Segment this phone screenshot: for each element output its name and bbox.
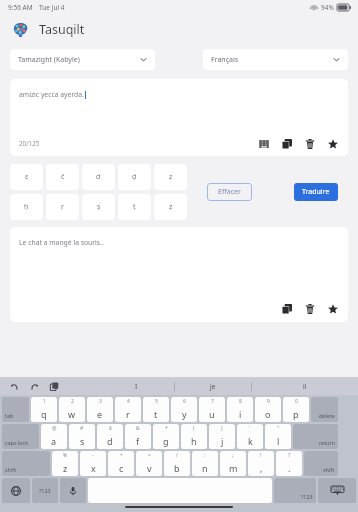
staticText: =	[148, 452, 151, 459]
button[interactable]: Copy	[280, 137, 293, 150]
button[interactable]: return	[293, 424, 338, 449]
staticText: caps lock	[5, 439, 29, 446]
staticText: tab	[5, 412, 14, 419]
button[interactable]: ;	[220, 451, 246, 476]
button[interactable]: ?123	[32, 478, 58, 503]
button[interactable]: 0	[283, 397, 309, 422]
button[interactable]: +	[108, 451, 134, 476]
button[interactable]: Hide keyboard	[318, 478, 356, 503]
button[interactable]: $	[97, 424, 123, 449]
button[interactable]: &	[125, 424, 151, 449]
button[interactable]: :	[192, 451, 218, 476]
button[interactable]: -	[80, 451, 106, 476]
button[interactable]: 5	[143, 397, 169, 422]
button[interactable]: Voice input	[60, 478, 86, 503]
button[interactable]: Delete	[303, 302, 316, 315]
staticText: delete	[319, 412, 335, 419]
staticText: z	[63, 462, 68, 474]
button[interactable]: Favorite	[326, 302, 339, 315]
staticText: f	[136, 435, 140, 447]
button[interactable]: Keyboard	[257, 137, 270, 150]
staticText: 4	[127, 398, 130, 405]
button[interactable]: ?123	[274, 478, 316, 503]
button[interactable]: Traduire	[294, 183, 338, 201]
staticText: &	[136, 425, 140, 432]
button[interactable]: ɛ	[10, 164, 43, 190]
staticText: r	[126, 408, 130, 420]
staticText: !	[260, 452, 262, 459]
button[interactable]: Delete	[303, 137, 316, 150]
staticText: -	[92, 452, 94, 459]
button[interactable]: ?	[276, 451, 302, 476]
button[interactable]: shift	[304, 451, 338, 476]
button[interactable]: Français	[203, 49, 348, 70]
button[interactable]: ẓ	[154, 194, 187, 220]
button[interactable]: 3	[87, 397, 113, 422]
staticText: ?123	[301, 493, 313, 500]
button[interactable]: ṣ	[82, 194, 115, 220]
button[interactable]: '	[237, 424, 263, 449]
staticText: d	[96, 172, 101, 182]
button[interactable]: !	[248, 451, 274, 476]
button[interactable]: )	[209, 424, 235, 449]
staticText: o	[265, 408, 271, 420]
button[interactable]: Change language	[2, 478, 30, 503]
button[interactable]: Effacer	[207, 183, 252, 201]
staticText: (	[193, 425, 195, 432]
button[interactable]: je	[175, 377, 251, 395]
staticText: return	[319, 439, 335, 446]
button[interactable]: 7	[199, 397, 225, 422]
staticText: u	[209, 408, 215, 420]
button[interactable]: (	[181, 424, 207, 449]
staticText: ẓ	[169, 172, 173, 182]
button[interactable]: d	[82, 164, 115, 190]
staticText: $	[109, 425, 112, 432]
staticText: ẓ	[169, 202, 173, 212]
button[interactable]: Tamazight (Kabyle)	[10, 49, 155, 70]
button[interactable]: =	[136, 451, 162, 476]
staticText: 2	[71, 398, 74, 405]
staticText: Français	[211, 55, 239, 65]
button[interactable]: #	[69, 424, 95, 449]
button[interactable]: 1	[31, 397, 57, 422]
button[interactable]: č	[46, 164, 79, 190]
button[interactable]: 2	[59, 397, 85, 422]
staticText: )	[221, 425, 223, 432]
button[interactable]: ḍ	[118, 164, 151, 190]
staticText: *	[165, 425, 168, 432]
button[interactable]: ḥ	[10, 194, 43, 220]
button[interactable]: 9	[255, 397, 281, 422]
button[interactable]: tab	[2, 397, 29, 422]
button[interactable]: Copy	[280, 302, 293, 315]
button[interactable]: Undo	[9, 381, 20, 392]
button[interactable]: Paste	[49, 381, 60, 392]
button[interactable]: 8	[227, 397, 253, 422]
staticText: ?123	[39, 487, 51, 494]
staticText: %	[63, 452, 68, 459]
button[interactable]: *	[153, 424, 179, 449]
button[interactable]: @	[41, 424, 67, 449]
staticText: 1	[43, 398, 46, 405]
button[interactable]: shift	[2, 451, 50, 476]
staticText: ;	[232, 452, 234, 459]
button[interactable]: Favorite	[326, 137, 339, 150]
button[interactable]: Redo	[29, 381, 40, 392]
staticText: Le chat a mangé la souris..	[19, 238, 104, 247]
button[interactable]: 4	[115, 397, 141, 422]
button[interactable]: %	[52, 451, 78, 476]
button[interactable]: ẓ	[154, 164, 187, 190]
button[interactable]: ṛ	[46, 194, 79, 220]
button[interactable]: delete	[311, 397, 338, 422]
staticText: Traduire	[302, 187, 330, 197]
staticText: I	[135, 382, 138, 391]
button[interactable]: caps lock	[2, 424, 39, 449]
staticText: p	[293, 408, 299, 420]
button[interactable]: 6	[171, 397, 197, 422]
button[interactable]: I	[98, 377, 174, 395]
button[interactable]: ṭ	[118, 194, 151, 220]
button[interactable]: "	[265, 424, 291, 449]
staticText: il	[303, 382, 307, 391]
button[interactable]: /	[164, 451, 190, 476]
button[interactable]: il	[252, 377, 358, 395]
